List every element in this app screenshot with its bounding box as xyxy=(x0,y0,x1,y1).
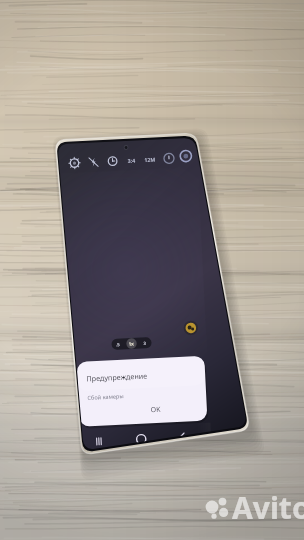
button[interactable]: Photo of phone showing camera error dial… xyxy=(0,0,304,540)
